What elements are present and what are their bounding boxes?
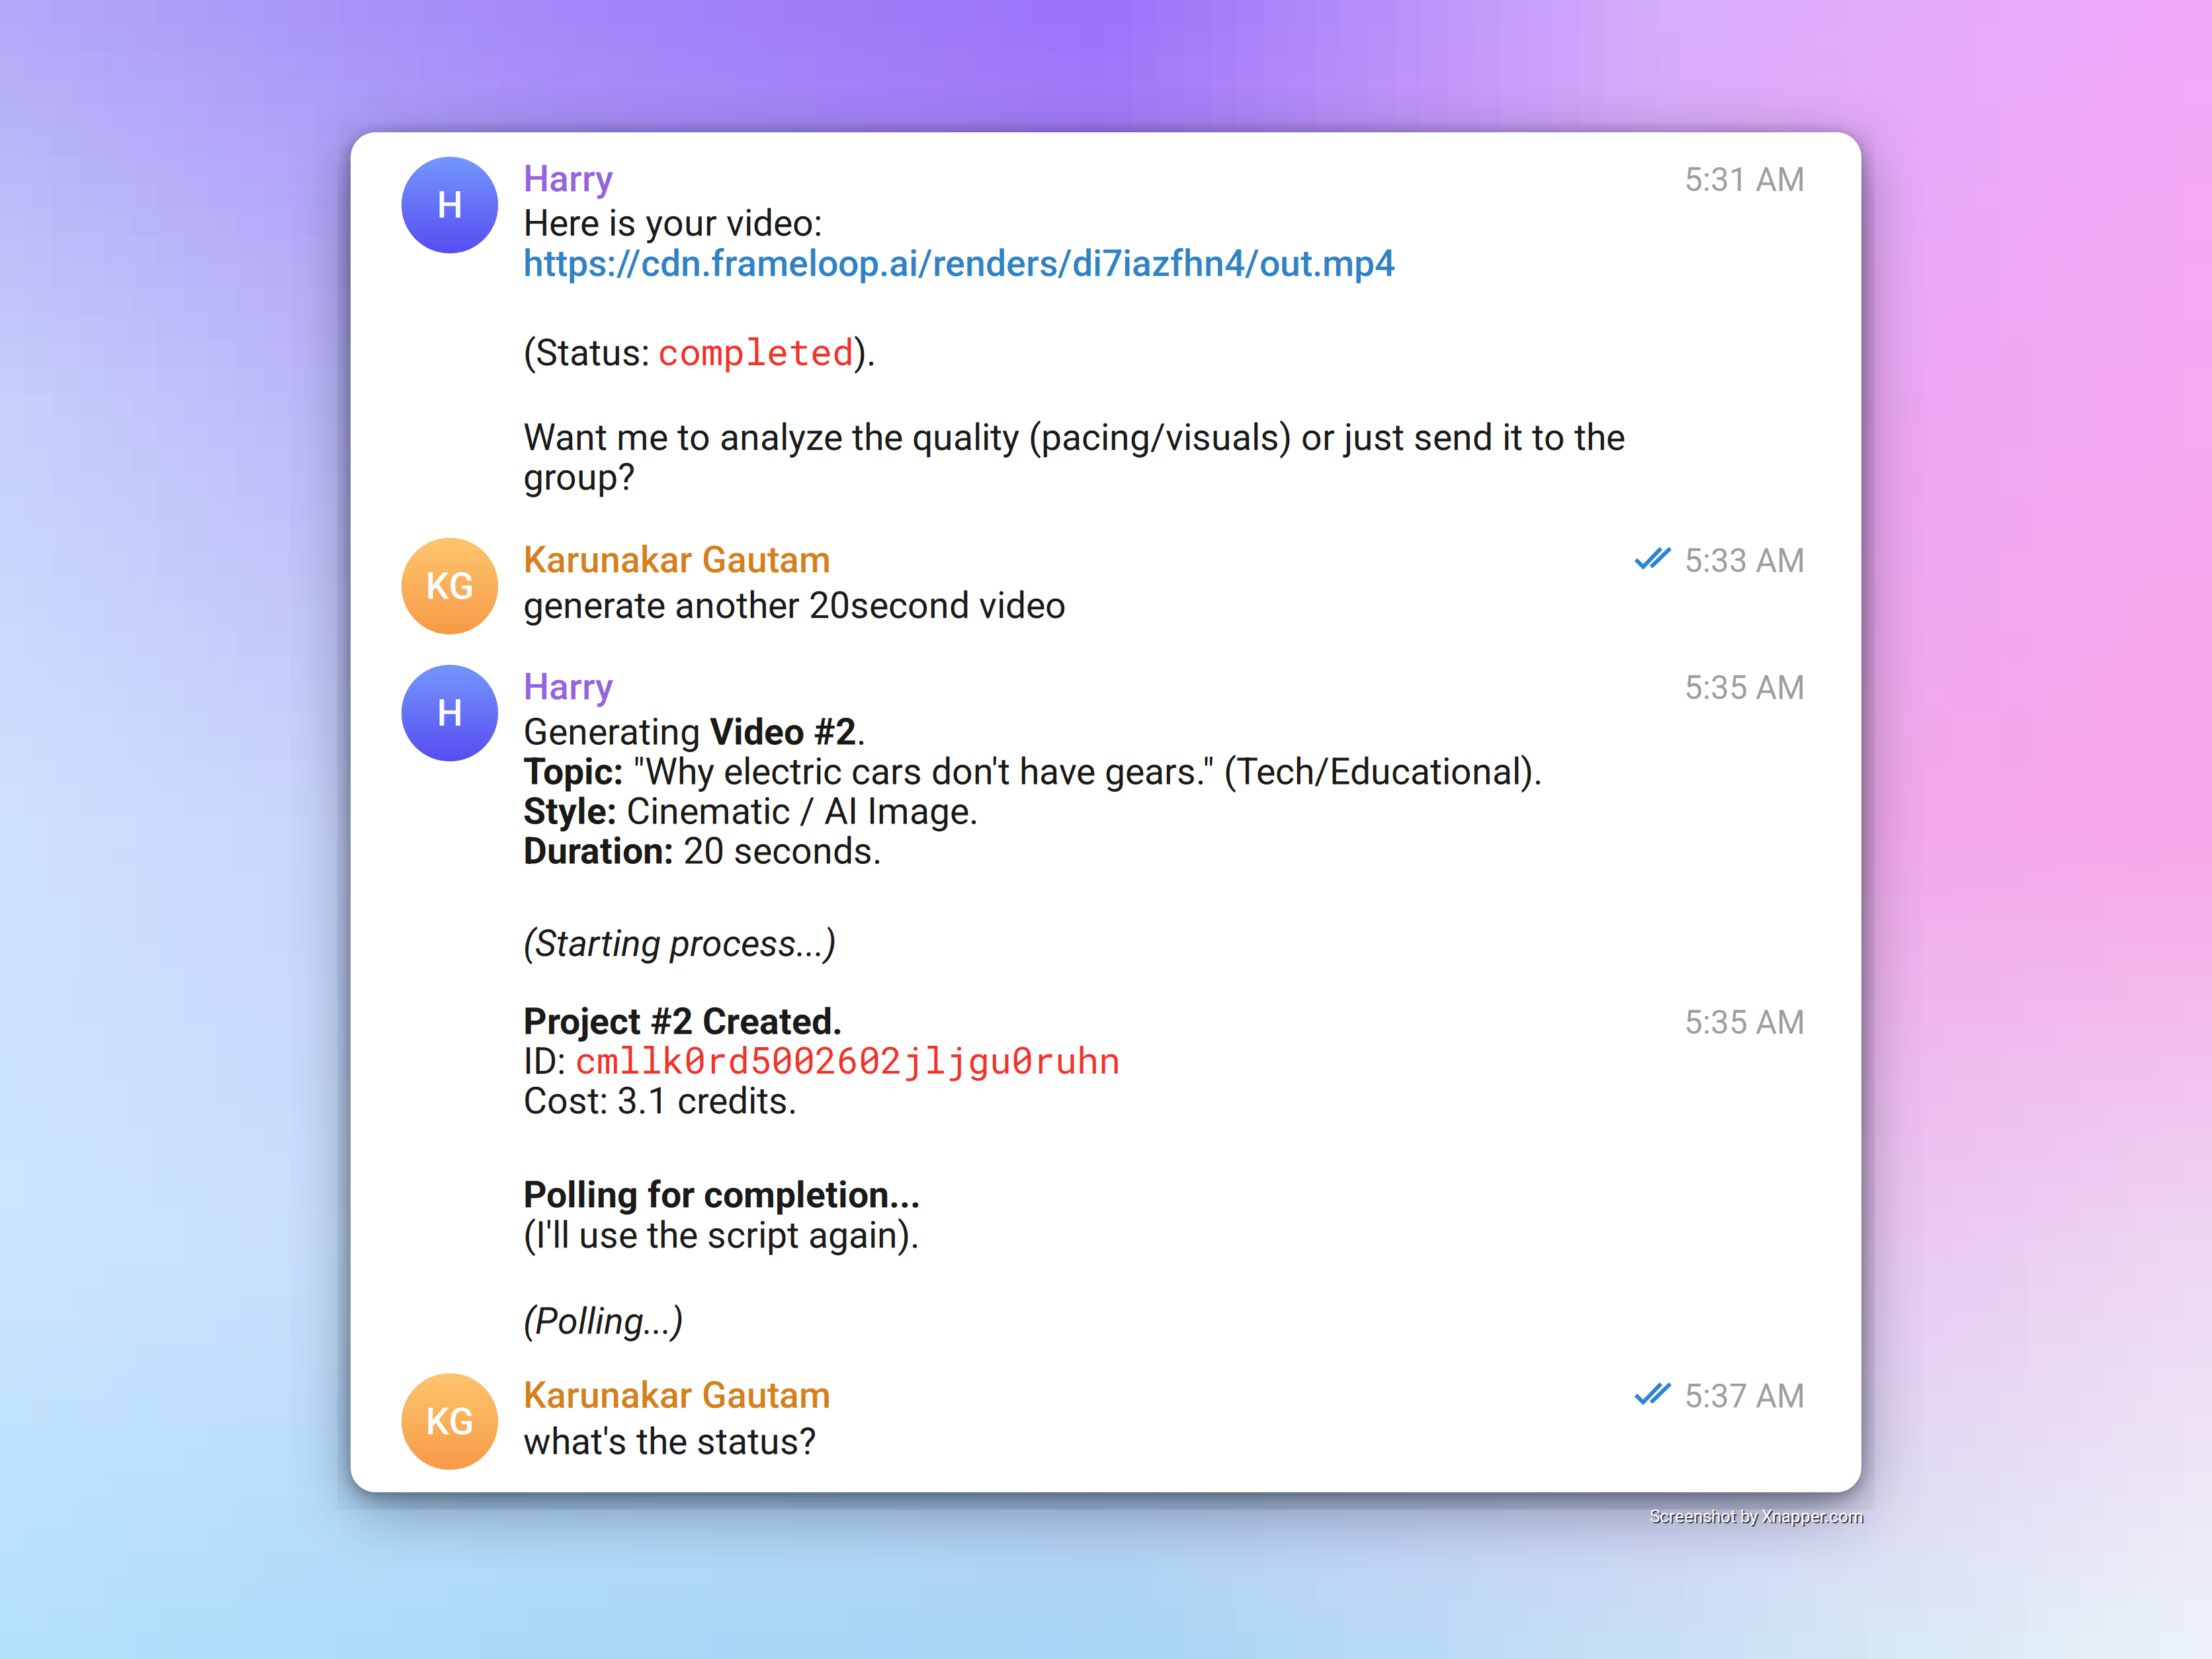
button[interactable]: 5:37 AM bbox=[1607, 1377, 1805, 1415]
staticText: Style: Cinematic / AI Image. bbox=[523, 790, 979, 832]
button[interactable]: Harry bbox=[0, 0, 2212, 1659]
staticText: 5:37 AM bbox=[1684, 1377, 1805, 1415]
staticText: 5:33 AM bbox=[1684, 542, 1805, 580]
button[interactable]: Karunakar Gautam bbox=[0, 0, 2212, 1659]
staticText: (Polling...) bbox=[523, 1300, 684, 1343]
button[interactable]: 5:35 AM bbox=[1607, 1003, 1805, 1042]
button[interactable]: Karunakar Gautam bbox=[402, 538, 498, 634]
staticText: H bbox=[437, 692, 463, 735]
staticText: cmllk0rd5002602jljgu0ruhn bbox=[575, 1035, 1121, 1084]
staticText: 5:35 AM bbox=[1684, 1003, 1805, 1042]
staticText: Want me to analyze the quality (pacing/v… bbox=[523, 416, 1625, 459]
staticText: Screenshot by Xnapper.com bbox=[1650, 1506, 1863, 1526]
staticText: KG bbox=[426, 564, 474, 608]
staticText: Polling for completion... bbox=[523, 1173, 921, 1216]
staticText: Generating Video #2. bbox=[523, 711, 867, 753]
staticText: 5:35 AM bbox=[1684, 669, 1805, 707]
staticText: Karunakar Gautam bbox=[523, 538, 831, 581]
staticText: completed bbox=[658, 327, 854, 375]
button[interactable]: https://cdn.frameloop.ai/renders/di7iazf… bbox=[523, 242, 1395, 285]
button[interactable]: Karunakar Gautam bbox=[0, 0, 2212, 1659]
staticText: KG bbox=[426, 1400, 474, 1443]
button[interactable]: Harry bbox=[0, 0, 2212, 1659]
staticText: what's the status? bbox=[523, 1420, 816, 1463]
staticText: Screenshot by Xnapper.com bbox=[1651, 1508, 1865, 1528]
staticText: ). bbox=[854, 331, 876, 374]
staticText: generate another 20second video bbox=[523, 584, 1066, 627]
staticText: Project #2 Created. bbox=[523, 1000, 843, 1043]
staticText: H bbox=[437, 184, 463, 226]
staticText: Harry bbox=[523, 157, 613, 200]
staticText: group? bbox=[523, 456, 635, 499]
button[interactable]: Harry bbox=[402, 665, 498, 761]
staticText: Karunakar Gautam bbox=[523, 1374, 831, 1417]
staticText: (Starting process...) bbox=[523, 922, 837, 965]
staticText: (I'll use the script again). bbox=[523, 1214, 920, 1257]
staticText: Duration: 20 seconds. bbox=[523, 830, 882, 872]
staticText: Topic: "Why electric cars don't have gea… bbox=[523, 751, 1543, 793]
staticText: Harry bbox=[523, 665, 613, 708]
staticText: https://cdn.frameloop.ai/renders/di7iazf… bbox=[523, 242, 1395, 285]
button[interactable]: 5:33 AM bbox=[1607, 542, 1805, 580]
staticText: Here is your video: bbox=[523, 202, 822, 245]
staticText: 5:31 AM bbox=[1684, 161, 1805, 199]
button[interactable]: Harry bbox=[402, 157, 498, 253]
staticText: Cost: 3.1 credits. bbox=[523, 1080, 798, 1122]
staticText: ID: bbox=[523, 1040, 566, 1083]
button[interactable]: 5:31 AM bbox=[1607, 161, 1805, 199]
button[interactable]: 5:35 AM bbox=[1607, 669, 1805, 707]
button[interactable]: Karunakar Gautam bbox=[402, 1373, 498, 1470]
staticText: (Status: bbox=[523, 331, 650, 374]
